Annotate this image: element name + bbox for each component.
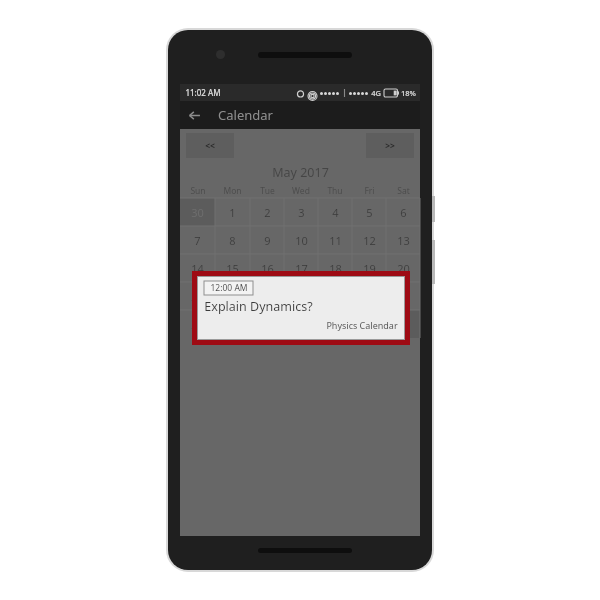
staticText: 17 [295,261,308,276]
staticText: 18% [401,88,416,98]
button[interactable]: 3 [386,310,420,338]
staticText: Physics Calendar [326,319,398,331]
staticText: 12:00 AM [210,282,248,294]
button[interactable]: 12:00 AM [198,277,404,339]
staticText: 5 [366,205,373,220]
button[interactable]: 8 [215,226,250,254]
button[interactable]: 2 [250,198,284,226]
staticText: << [205,140,215,152]
staticText: 27 [397,289,410,304]
button[interactable]: 19 [352,254,386,282]
staticText: 10 [295,233,308,248]
staticText: 2 [264,205,271,220]
staticText: 3 [298,205,305,220]
staticText: 30 [191,205,204,220]
staticText: 2 [366,317,373,332]
staticText: Fri [364,185,375,197]
button[interactable]: 24 [284,282,318,310]
button[interactable]: 6 [386,198,420,226]
button[interactable]: 27 [386,282,420,310]
staticText: 9 [264,233,271,248]
button[interactable]: 18 [318,254,352,282]
staticText: 11 [329,233,342,248]
button[interactable]: 10 [284,226,318,254]
button[interactable]: << [186,133,234,158]
staticText: 14 [191,261,204,276]
staticText: 19 [363,261,376,276]
staticText: >> [385,140,395,152]
staticText: 3 [400,317,407,332]
staticText: 6 [400,205,407,220]
button[interactable]: 13 [386,226,420,254]
staticText: Sat [397,185,410,197]
staticText: Explain Dynamics? [204,298,313,315]
staticText: 15 [226,261,239,276]
button[interactable]: >> [366,133,414,158]
button[interactable]: 21 [180,282,215,310]
staticText: 4 [332,205,339,220]
button[interactable]: 2 [352,310,386,338]
staticText: 21 [191,289,204,304]
staticText: 22 [226,289,239,304]
button[interactable]: 5 [352,198,386,226]
staticText: 28 [191,317,204,332]
staticText: 7 [194,233,201,248]
staticText: 20 [397,261,410,276]
button[interactable]: 3 [284,198,318,226]
button[interactable]: 30 [250,310,284,338]
button[interactable]: 1 [318,310,352,338]
button[interactable]: 23 [250,282,284,310]
staticText: 4G [371,88,381,98]
staticText: Wed [292,185,310,197]
staticText: 12 [363,233,376,248]
button[interactable]: 7 [180,226,215,254]
staticText: 1 [332,317,339,332]
button[interactable]: 17 [284,254,318,282]
button[interactable]: Back [180,101,208,129]
button[interactable]: 15 [215,254,250,282]
button[interactable]: 9 [250,226,284,254]
staticText: May 2017 [272,164,329,181]
button[interactable]: 20 [386,254,420,282]
button[interactable]: 1 [215,198,250,226]
button[interactable]: 14 [180,254,215,282]
staticText: 18 [329,261,342,276]
staticText: Tue [260,185,275,197]
staticText: 11:02 AM [185,87,221,98]
staticText: 13 [397,233,410,248]
button[interactable]: 22 [215,282,250,310]
staticText: Sun [190,185,206,197]
staticText: 1 [229,205,236,220]
staticText: 16 [261,261,274,276]
button[interactable]: 31 [284,310,318,338]
staticText: Thu [327,185,343,197]
staticText: Mon [223,185,242,197]
button[interactable]: 12 [352,226,386,254]
staticText: Calendar [218,106,273,124]
button[interactable]: 4 [318,198,352,226]
button[interactable]: 30 [180,198,215,226]
button[interactable]: 11 [318,226,352,254]
staticText: 8 [229,233,236,248]
button[interactable]: 16 [250,254,284,282]
button[interactable]: 29 [215,310,250,338]
button[interactable]: 28 [180,310,215,338]
